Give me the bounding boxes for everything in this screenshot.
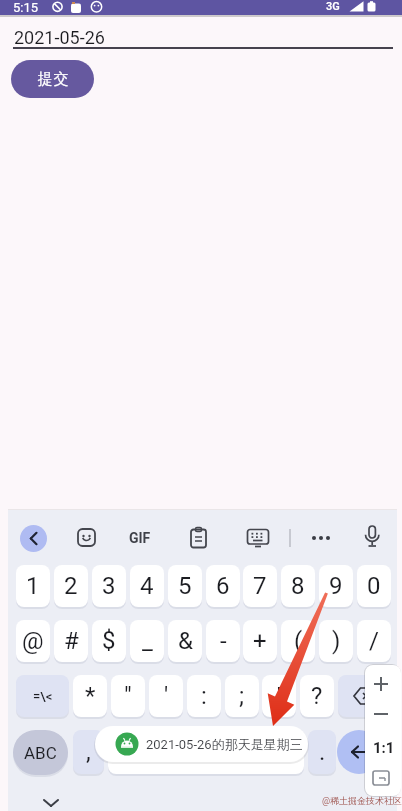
button[interactable]: ( <box>281 620 315 662</box>
staticText: 8 <box>291 572 305 600</box>
staticText: , <box>86 738 91 766</box>
staticText: 5:15 <box>13 0 39 15</box>
button[interactable] <box>77 528 97 548</box>
staticText: GIF <box>129 530 151 546</box>
button[interactable] <box>337 730 381 774</box>
button[interactable]: =\< <box>16 675 69 717</box>
staticText: ! <box>276 682 283 710</box>
staticText: . <box>319 738 326 766</box>
button[interactable]: $ <box>92 620 126 662</box>
staticText: 4 <box>140 572 154 600</box>
button[interactable]: : <box>187 675 221 717</box>
staticText: 0 <box>367 572 381 600</box>
staticText: @稀土掘金技术社区 <box>322 795 402 806</box>
button[interactable]: _ <box>130 620 164 662</box>
button[interactable]: / <box>357 620 391 662</box>
button[interactable]: 6 <box>206 565 240 607</box>
button[interactable] <box>12 22 392 49</box>
button[interactable]: 0 <box>357 565 391 607</box>
button[interactable]: ) <box>319 620 353 662</box>
button[interactable] <box>20 525 47 552</box>
button[interactable] <box>310 530 332 546</box>
button[interactable]: 1 <box>16 565 50 607</box>
button[interactable] <box>190 527 207 549</box>
staticText: + <box>253 627 267 655</box>
button[interactable]: & <box>168 620 202 662</box>
button[interactable] <box>366 733 400 763</box>
button[interactable] <box>366 765 400 793</box>
button[interactable] <box>247 529 269 547</box>
staticText: _ <box>142 627 153 655</box>
button[interactable] <box>363 525 381 551</box>
button[interactable]: 5 <box>168 565 202 607</box>
staticText: ; <box>239 682 245 710</box>
staticText: 提交 <box>37 70 69 89</box>
staticText: ABC <box>24 743 57 763</box>
button[interactable]: + <box>243 620 277 662</box>
button[interactable]: ABC <box>13 730 68 775</box>
button[interactable]: 2 <box>54 565 88 607</box>
button[interactable]: 9 <box>319 565 353 607</box>
button[interactable]: " <box>111 675 145 717</box>
button[interactable] <box>338 675 391 717</box>
button[interactable]: , <box>73 730 104 774</box>
staticText: ) <box>332 627 341 655</box>
button[interactable]: ! <box>262 675 296 717</box>
staticText: & <box>178 627 193 655</box>
button[interactable]: - <box>206 620 240 662</box>
staticText: 9 <box>329 572 343 600</box>
staticText: - <box>220 627 227 655</box>
staticText: 1:1 <box>373 739 395 757</box>
staticText: 2021-05-26 <box>14 27 105 48</box>
button[interactable] <box>366 700 400 728</box>
staticText: # <box>64 627 79 655</box>
button[interactable]: GIF <box>126 530 154 546</box>
staticText: 3G <box>326 0 340 13</box>
staticText: 2021-05-26的那天是星期三 <box>146 736 303 752</box>
staticText: / <box>369 627 379 655</box>
button[interactable] <box>41 797 61 809</box>
button[interactable]: ; <box>225 675 259 717</box>
button[interactable]: . <box>308 730 336 774</box>
staticText: =\< <box>33 689 53 704</box>
button[interactable]: 提交 <box>11 60 94 98</box>
staticText: ? <box>311 682 323 710</box>
button[interactable] <box>108 730 304 774</box>
button[interactable]: ? <box>300 675 334 717</box>
button[interactable]: 7 <box>243 565 277 607</box>
staticText: @ <box>22 627 44 655</box>
button[interactable]: 8 <box>281 565 315 607</box>
staticText: ( <box>294 627 303 655</box>
button[interactable]: 4 <box>130 565 164 607</box>
staticText: 2 <box>64 572 78 600</box>
button[interactable]: ' <box>149 675 183 717</box>
button[interactable] <box>366 668 400 698</box>
button[interactable]: # <box>54 620 88 662</box>
button[interactable]: 3 <box>92 565 126 607</box>
staticText: 1 <box>26 572 40 600</box>
staticText: " <box>124 682 132 710</box>
staticText: 5 <box>178 572 192 600</box>
staticText: * <box>85 682 96 710</box>
staticText: 3 <box>102 572 116 600</box>
staticText: 6 <box>216 572 230 600</box>
staticText: 7 <box>253 572 267 600</box>
staticText: $ <box>102 627 116 655</box>
button[interactable]: * <box>73 675 107 717</box>
button[interactable]: @ <box>16 620 50 662</box>
staticText: : <box>201 682 207 710</box>
staticText: ' <box>164 682 169 710</box>
